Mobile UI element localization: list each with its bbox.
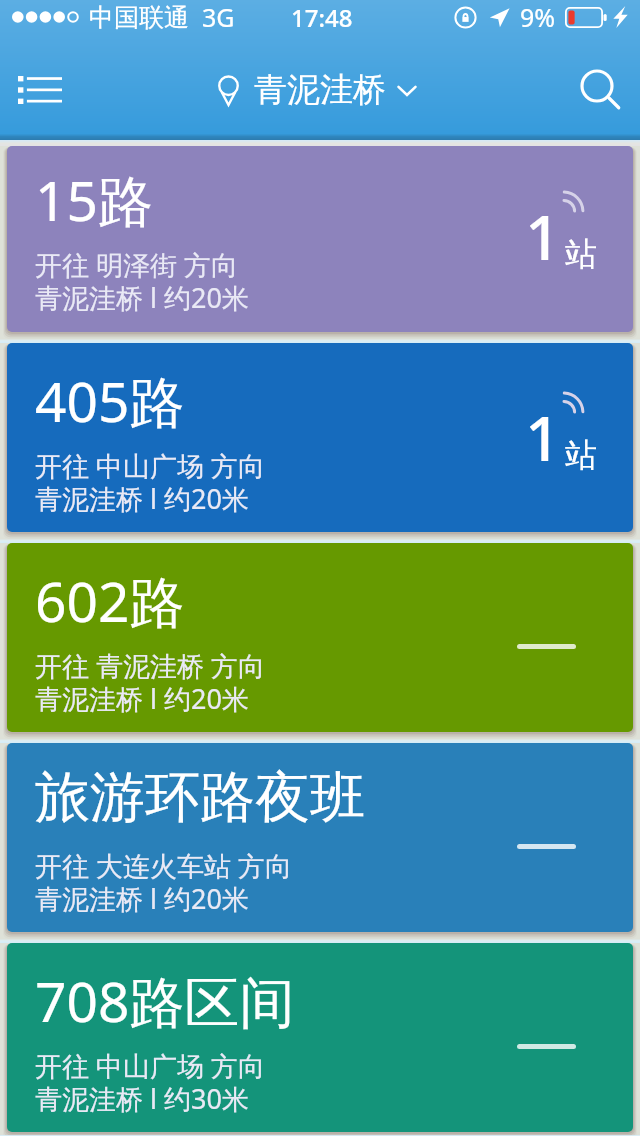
staticText: 602路 [35, 563, 185, 638]
staticText: 青泥洼桥 l 约20米 [35, 480, 249, 517]
staticText: 708路区间 [35, 963, 295, 1038]
staticText: 15路 [35, 162, 153, 237]
button[interactable]: 602路 [7, 543, 633, 732]
staticText: 17:48 [291, 1, 353, 34]
staticText: 1 [525, 194, 561, 278]
button[interactable]: 15路 [7, 146, 633, 332]
staticText: 旅游环路夜班 [35, 763, 365, 832]
staticText: 青泥洼桥 l 约20米 [35, 279, 249, 316]
button[interactable]: 708路区间 [7, 943, 633, 1132]
staticText: 中国联通 [89, 2, 189, 33]
staticText: 1 [525, 395, 561, 479]
staticText: 站 [565, 435, 597, 475]
staticText: 开往 中山广场 方向 [35, 447, 266, 484]
button[interactable]: Menu [8, 58, 72, 122]
button[interactable]: Search [564, 58, 628, 122]
button[interactable]: 旅游环路夜班 [7, 743, 633, 932]
staticText: 开往 大连火车站 方向 [35, 847, 293, 884]
staticText: 3G [202, 0, 235, 34]
staticText: 青泥洼桥 l 约20米 [35, 680, 249, 717]
staticText: 青泥洼桥 l 约20米 [35, 880, 249, 917]
staticText: 9% [520, 0, 556, 34]
staticText: 开往 中山广场 方向 [35, 1047, 266, 1084]
button[interactable]: 405路 [7, 343, 633, 532]
staticText: 站 [565, 234, 597, 274]
staticText: 开往 明泽街 方向 [35, 246, 239, 283]
staticText: 405路 [35, 363, 185, 438]
staticText: 青泥洼桥 [254, 69, 386, 111]
button[interactable]: 青泥洼桥 [218, 69, 417, 111]
staticText: 开往 青泥洼桥 方向 [35, 647, 266, 684]
staticText: 青泥洼桥 l 约30米 [35, 1080, 249, 1117]
